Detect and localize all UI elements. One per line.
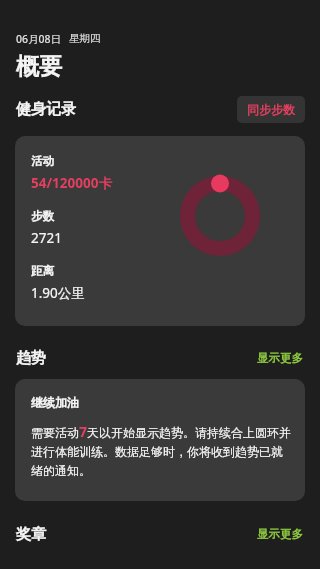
staticText: 54/120000卡 bbox=[31, 174, 112, 192]
staticText: 距离 bbox=[31, 264, 54, 278]
staticText: 健身记录 bbox=[16, 100, 76, 119]
staticText: 继续加油 bbox=[31, 395, 79, 410]
staticText: 显示更多 bbox=[257, 527, 303, 541]
staticText: 概要 bbox=[16, 52, 62, 81]
staticText: 步数 bbox=[31, 209, 54, 223]
staticText: 06月08日 bbox=[16, 32, 62, 46]
staticText: 1.90公里 bbox=[31, 284, 85, 302]
button[interactable]: 同步步数 bbox=[237, 96, 305, 123]
staticText: 显示更多 bbox=[257, 351, 303, 365]
button[interactable]: 显示更多 bbox=[254, 523, 306, 545]
button[interactable]: 显示更多 bbox=[254, 347, 306, 369]
staticText: 需要活动7天以开始显示趋势。请持续合上圆环并进行体能训练。数据足够时，你将收到趋… bbox=[31, 422, 292, 479]
staticText: 2721 bbox=[31, 229, 62, 247]
other: Activity ring progress bbox=[170, 166, 270, 266]
staticText: 趋势 bbox=[16, 349, 46, 368]
staticText: 活动 bbox=[31, 154, 54, 168]
button[interactable]: 活动 bbox=[15, 136, 305, 326]
button[interactable]: 继续加油 bbox=[15, 379, 305, 501]
staticText: 星期四 bbox=[69, 32, 101, 45]
staticText: 奖章 bbox=[16, 525, 46, 544]
staticText: 同步步数 bbox=[247, 102, 295, 117]
